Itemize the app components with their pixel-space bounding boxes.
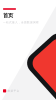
staticText: 一站式接入，全面数据洞察 [3, 21, 39, 24]
staticText: 首页 [3, 12, 13, 19]
staticText: 数据平台 [8, 89, 20, 92]
